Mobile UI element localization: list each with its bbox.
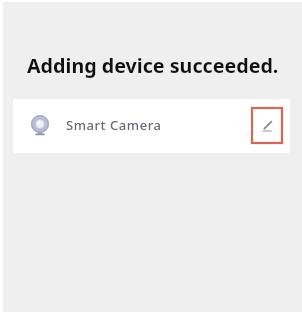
button[interactable]: Edit device name (252, 108, 282, 143)
staticText: Adding device succeeded. (27, 52, 279, 79)
button[interactable]: Smart Camera (13, 99, 290, 153)
staticText: Smart Camera (66, 116, 162, 134)
